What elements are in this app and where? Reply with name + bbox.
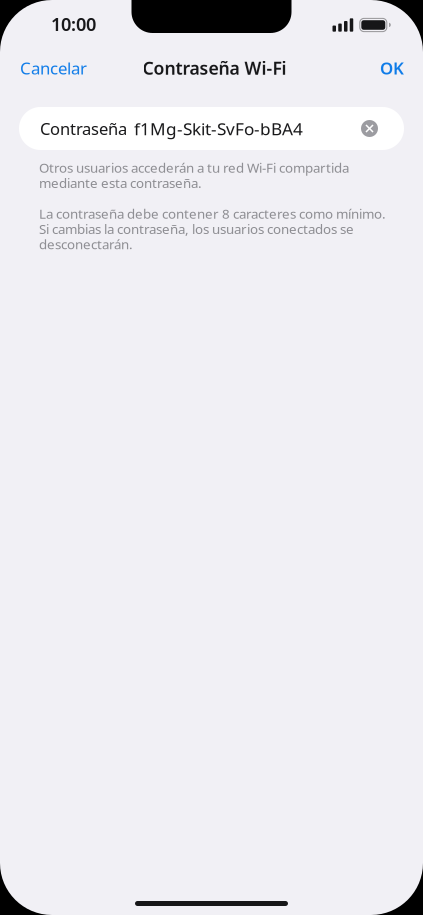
button[interactable]: Borrar texto	[348, 107, 391, 150]
staticText: 10:00	[51, 12, 96, 36]
button[interactable]: Contraseña, f1Mg-Skit-SvFo-bBA4	[19, 107, 348, 150]
staticText: La contraseña debe contener 8 caracteres…	[39, 205, 386, 222]
staticText: f1Mg-Skit-SvFo-bBA4	[134, 117, 303, 140]
staticText: OK	[380, 57, 404, 79]
staticText: Si cambias la contraseña, los usuarios c…	[39, 220, 354, 238]
staticText: Cancelar	[20, 57, 87, 79]
staticText: Contraseña Wi-Fi	[142, 56, 286, 80]
staticText: desconectarán.	[39, 235, 133, 253]
button[interactable]: OK	[370, 46, 414, 90]
staticText: Otros usuarios accederán a tu red Wi-Fi …	[39, 159, 349, 176]
staticText: Contraseña	[40, 117, 127, 139]
button[interactable]: Cancelar	[12, 46, 95, 90]
staticText: mediante esta contraseña.	[39, 174, 202, 192]
